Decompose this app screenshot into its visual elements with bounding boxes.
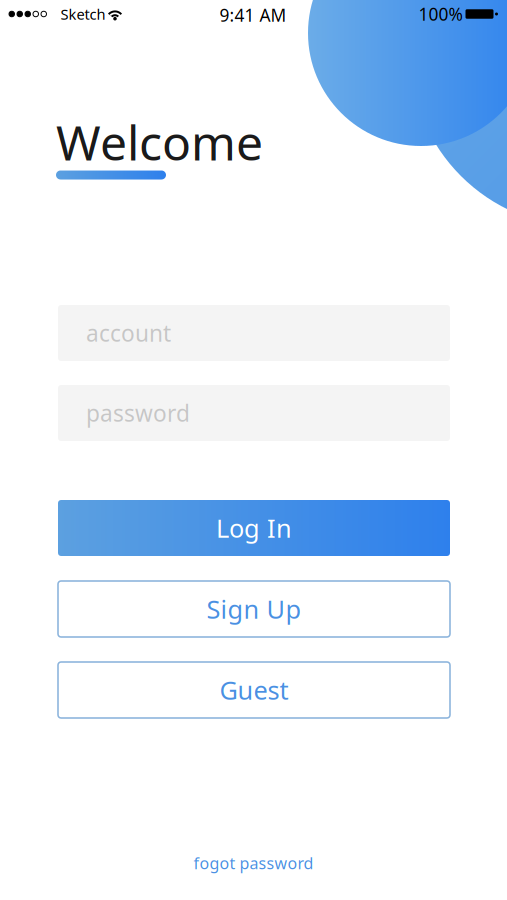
staticText: Welcome xyxy=(56,110,263,174)
staticText: Log In xyxy=(216,511,292,545)
staticText: Sketch xyxy=(60,4,105,24)
staticText: 9:41 AM xyxy=(219,3,286,26)
staticText: Guest xyxy=(219,673,288,707)
button[interactable]: Guest xyxy=(58,662,450,718)
button[interactable]: password xyxy=(58,385,450,441)
staticText: 100% xyxy=(418,2,462,25)
staticText: Sign Up xyxy=(206,592,301,626)
button[interactable]: Log In xyxy=(58,500,450,556)
staticText: fogot password xyxy=(193,852,313,874)
button[interactable]: account xyxy=(58,305,450,361)
button[interactable]: fogot password xyxy=(153,846,353,880)
staticText: password xyxy=(86,398,190,428)
staticText: account xyxy=(86,318,171,348)
button[interactable]: Sign Up xyxy=(58,581,450,637)
